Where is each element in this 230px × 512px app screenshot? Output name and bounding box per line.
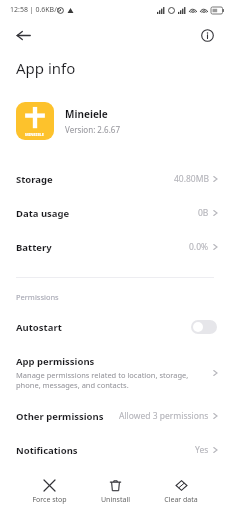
button[interactable]: Storage (0, 162, 230, 196)
staticText: Uninstall (101, 495, 130, 505)
button[interactable]: Force stop (25, 476, 73, 508)
button[interactable]: Notifications (0, 433, 230, 467)
button[interactable]: App permissions (0, 348, 230, 397)
staticText: Other permissions (16, 410, 104, 423)
staticText: Notifications (16, 444, 78, 457)
staticText: Permissions (16, 292, 59, 302)
staticText: Manage permissions related to location, … (16, 370, 189, 390)
staticText: 12:58 | 0.6KB/s (10, 5, 61, 15)
button[interactable]: Battery saver (0, 467, 230, 501)
button[interactable]: About (194, 22, 220, 48)
staticText: App info (16, 58, 76, 78)
staticText: Mineiele (65, 107, 108, 121)
staticText: Yes (195, 444, 209, 456)
staticText: MIUI Battery saver (134, 478, 209, 490)
button[interactable]: Clear data (157, 476, 205, 508)
button[interactable]: Data usage (0, 196, 230, 230)
staticText: App permissions (16, 355, 95, 368)
staticText: Version: 2.6.67 (65, 124, 120, 135)
staticText: Data usage (16, 207, 70, 220)
staticText: Clear data (164, 495, 198, 505)
staticText: Force stop (32, 495, 67, 505)
button[interactable]: Back (10, 22, 36, 48)
staticText: Battery (16, 241, 52, 254)
button[interactable]: Autostart (0, 310, 230, 344)
staticText: 40.80MB (174, 173, 209, 185)
button[interactable]: Battery (0, 230, 230, 264)
staticText: Autostart (16, 321, 62, 334)
staticText: Battery saver (16, 478, 80, 491)
staticText: 0.0% (189, 241, 209, 253)
staticText: 0B (198, 207, 209, 219)
staticText: Allowed 3 permissions (119, 410, 209, 422)
staticText: Storage (16, 173, 53, 186)
button[interactable]: Other permissions (0, 399, 230, 433)
staticText: MINEIELE (25, 132, 45, 137)
button[interactable]: Uninstall (91, 476, 139, 508)
